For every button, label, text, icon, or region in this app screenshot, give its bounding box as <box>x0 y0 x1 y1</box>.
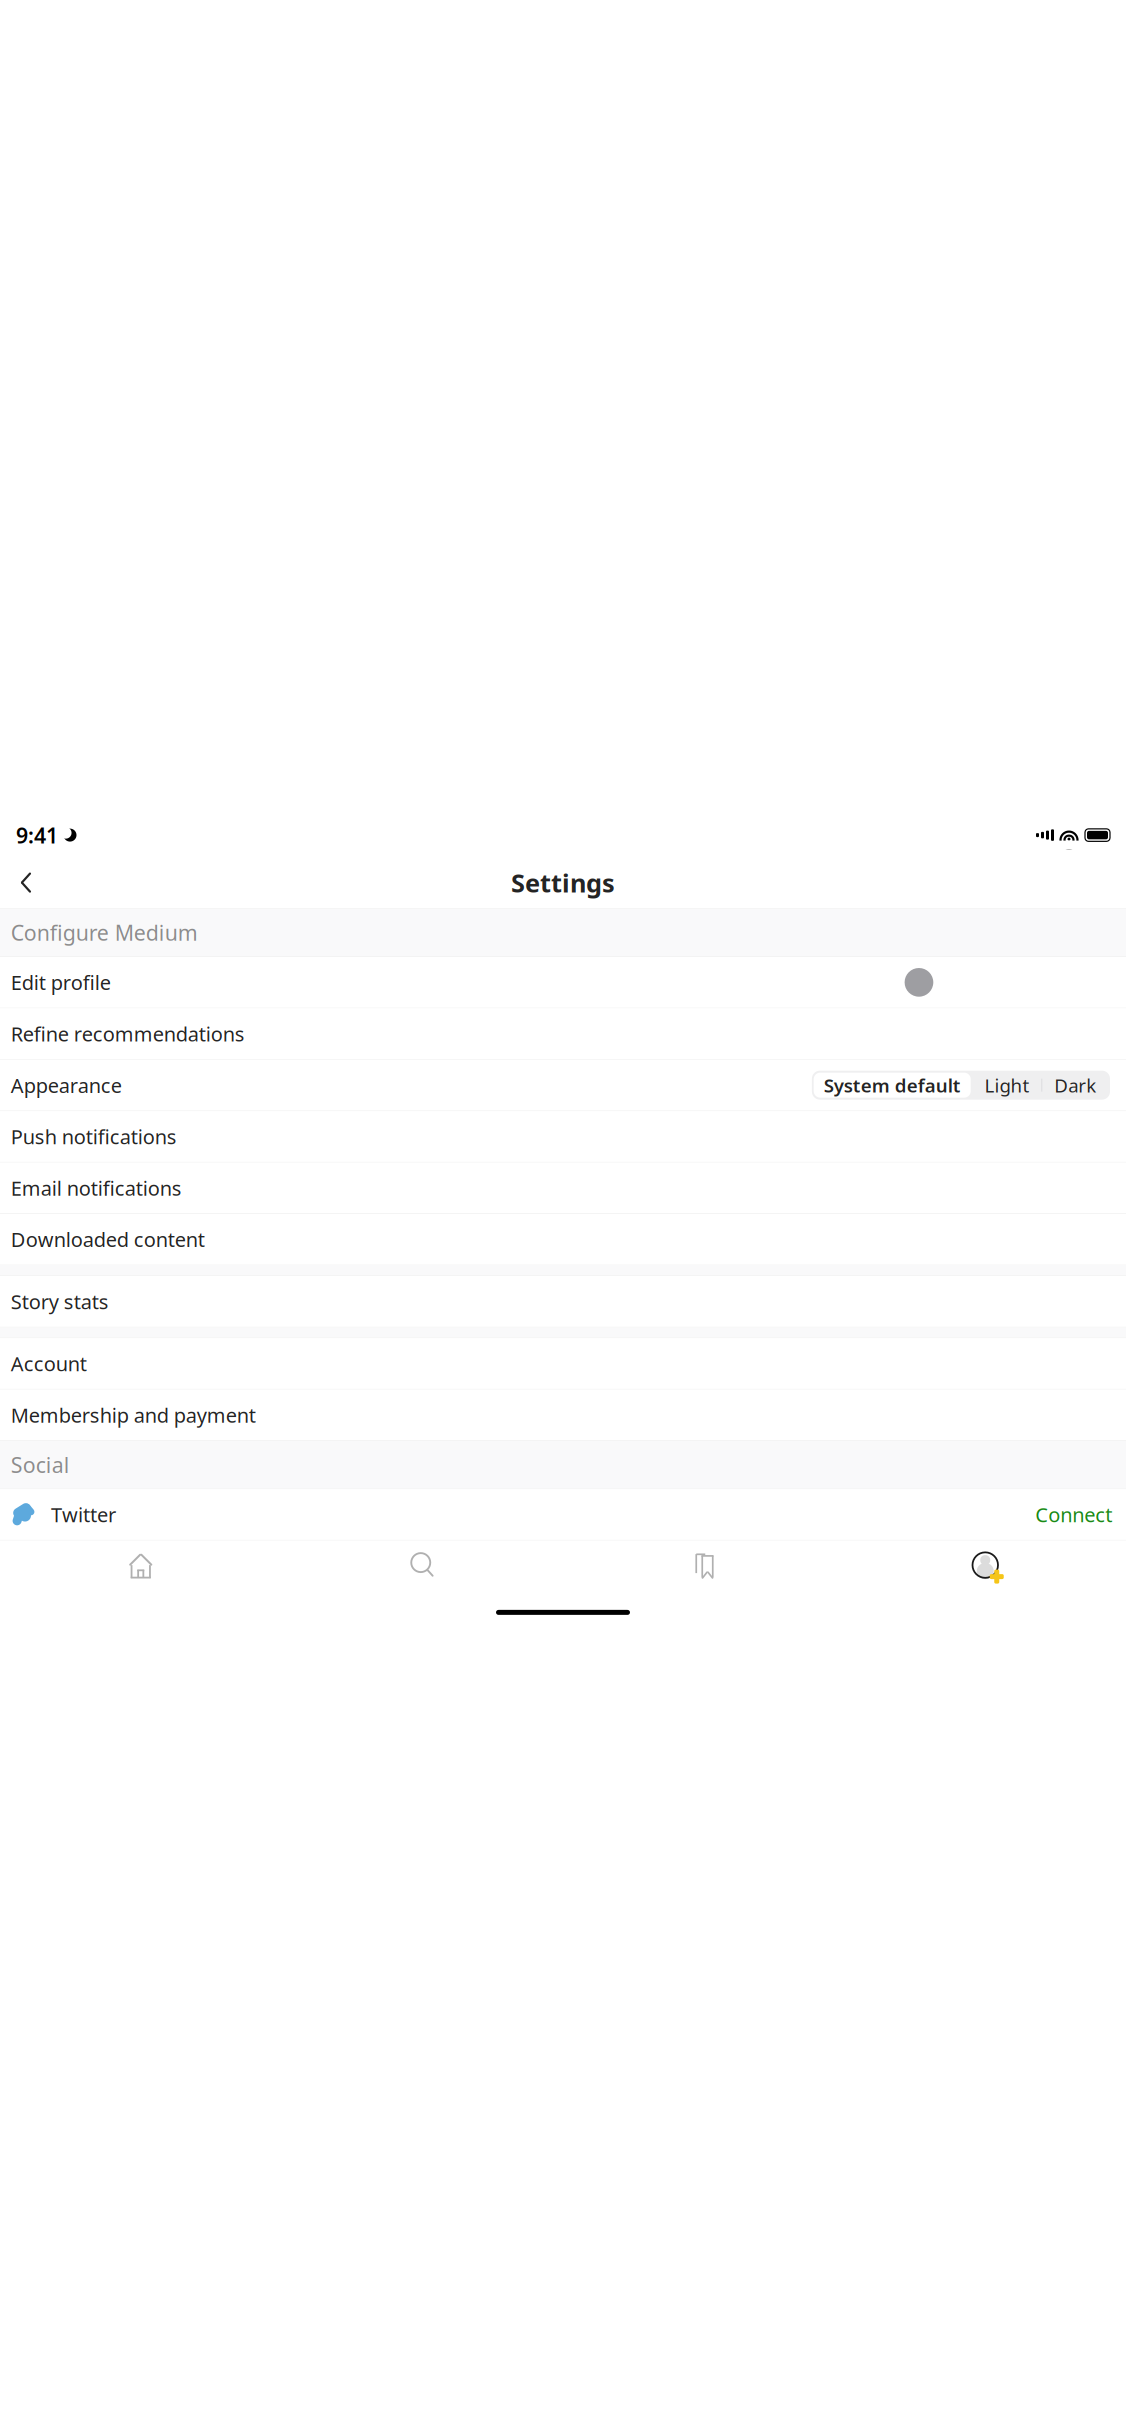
staticText: 9:41 <box>16 821 58 849</box>
button[interactable]: Story stats <box>0 1276 1126 1327</box>
button[interactable]: Refine recommendations <box>0 1008 1126 1059</box>
button[interactable]: Downloaded content <box>0 1214 1126 1265</box>
button[interactable]: Push notifications <box>0 1111 1126 1162</box>
button[interactable]: Profile <box>844 1541 1126 1590</box>
button[interactable]: Home <box>0 1541 281 1590</box>
staticText: Connect <box>1035 1501 1112 1528</box>
button[interactable]: Membership and payment <box>0 1390 1126 1440</box>
staticText: Refine recommendations <box>11 1020 245 1047</box>
button[interactable]: Bookmarks <box>563 1541 844 1590</box>
button[interactable]: Back <box>9 866 43 900</box>
staticText: Appearance <box>11 1072 122 1098</box>
staticText: Social <box>11 1451 70 1479</box>
button[interactable]: Email notifications <box>0 1163 1126 1213</box>
button[interactable]: Dark <box>1042 1073 1108 1098</box>
staticText: Dark <box>1054 1073 1096 1098</box>
staticText: Account <box>11 1350 87 1377</box>
staticText: Edit profile <box>11 969 111 996</box>
button[interactable]: Edit profile <box>0 957 1126 1008</box>
button[interactable]: Search <box>281 1541 563 1590</box>
button[interactable]: Light <box>972 1073 1041 1098</box>
staticText: System default <box>824 1073 961 1098</box>
staticText: Downloaded content <box>11 1226 205 1253</box>
staticText: Story stats <box>11 1288 109 1315</box>
staticText: Push notifications <box>11 1123 177 1150</box>
staticText: Membership and payment <box>11 1402 256 1428</box>
staticText: Light <box>984 1073 1029 1098</box>
button[interactable]: Twitter <box>0 1489 1126 1540</box>
staticText: Email notifications <box>11 1175 182 1201</box>
staticText: Twitter <box>51 1501 116 1528</box>
staticText: Configure Medium <box>11 918 198 947</box>
staticText: Settings <box>511 866 615 899</box>
button[interactable]: System default <box>814 1073 971 1098</box>
button[interactable]: Account <box>0 1338 1126 1389</box>
